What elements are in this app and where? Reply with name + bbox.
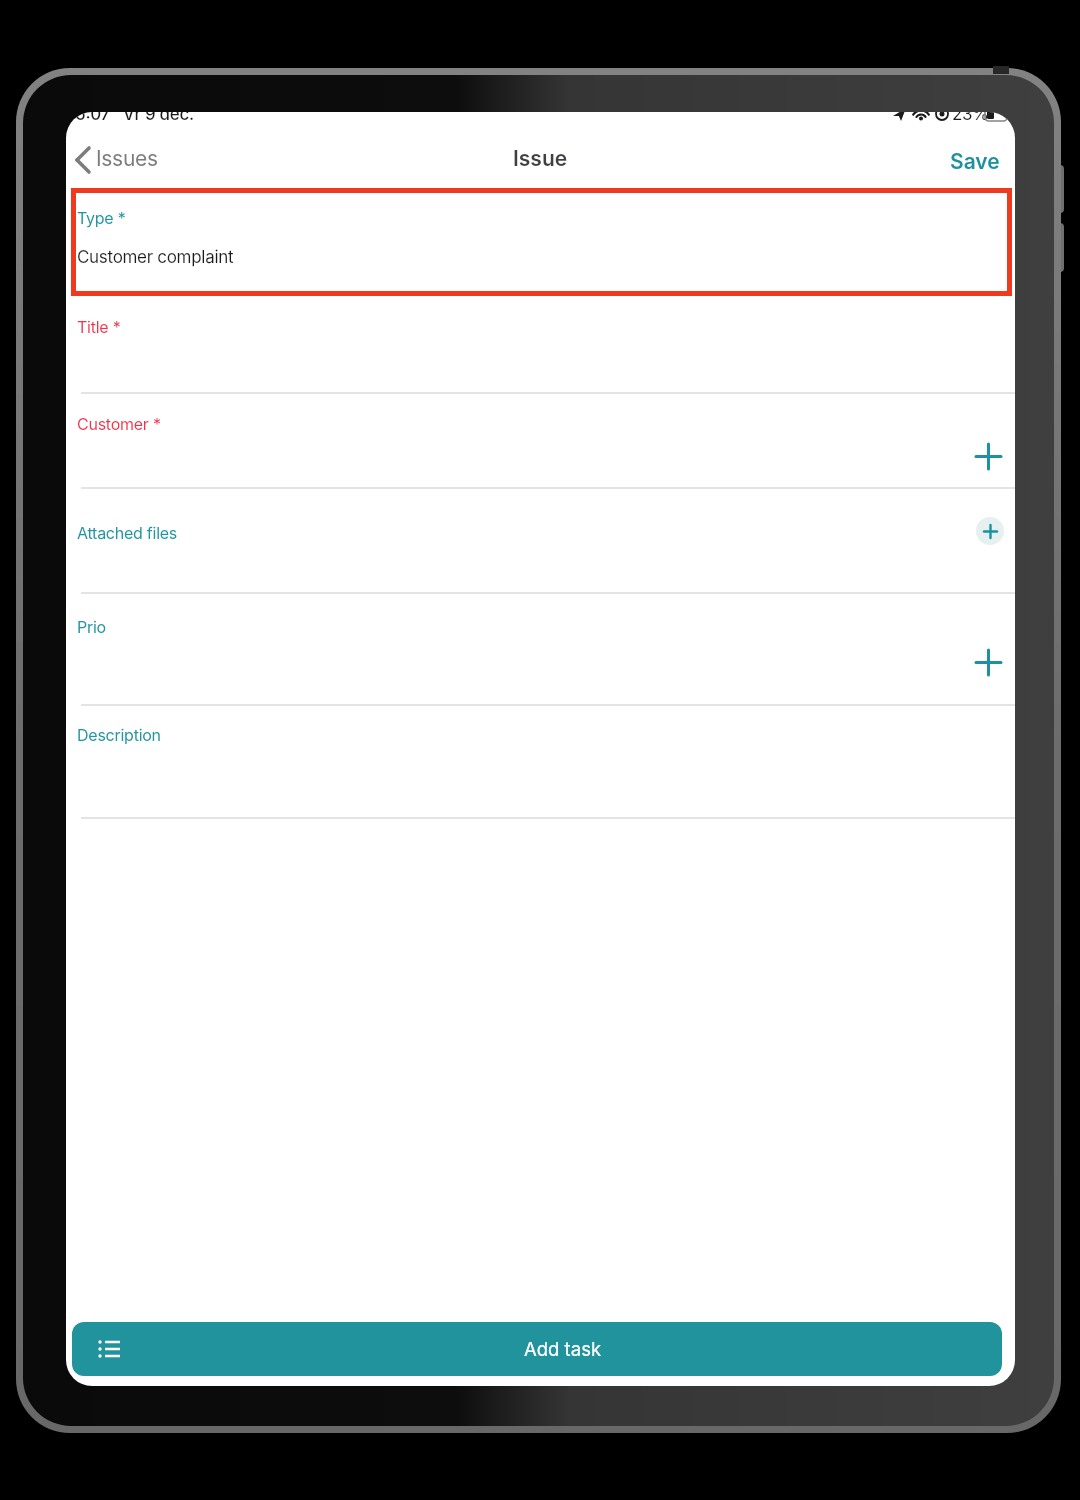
staticText: Save xyxy=(950,149,1000,174)
button[interactable]: Save xyxy=(940,140,1010,182)
button[interactable]: Description xyxy=(66,706,1015,817)
staticText: Prio xyxy=(77,617,106,636)
button[interactable] xyxy=(976,517,1004,545)
staticText: Attached files xyxy=(77,523,178,542)
staticText: Issue xyxy=(513,146,568,171)
staticText: 23% xyxy=(952,112,989,125)
button[interactable]: Issues xyxy=(70,142,180,182)
button[interactable]: Prio xyxy=(66,594,1015,704)
button[interactable]: Customer * xyxy=(66,394,1015,487)
staticText: Issues xyxy=(96,146,158,171)
button[interactable]: Add task xyxy=(72,1322,1002,1376)
button[interactable]: Title * xyxy=(66,302,1015,394)
staticText: Customer complaint xyxy=(77,247,234,268)
staticText: Add task xyxy=(524,1338,602,1360)
staticText: Title * xyxy=(77,317,121,336)
button[interactable]: Attached files xyxy=(66,489,1015,592)
staticText: Description xyxy=(77,725,161,744)
button[interactable]: Type * xyxy=(71,188,1012,296)
staticText: Type * xyxy=(77,208,126,227)
staticText: 6:07 Vr 9 dec. xyxy=(75,112,194,125)
staticText: Customer * xyxy=(77,414,161,433)
